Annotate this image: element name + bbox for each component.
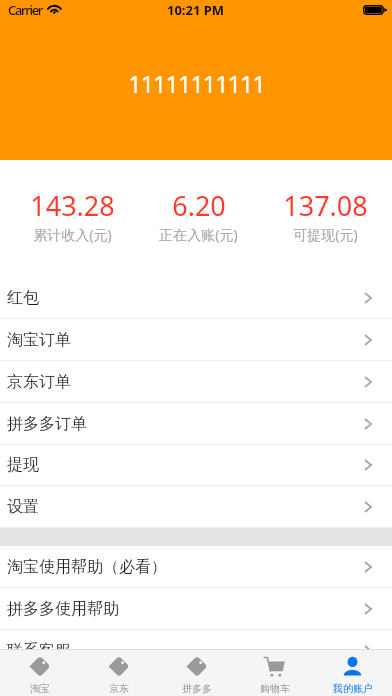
staticText: 正在入账(元) (159, 225, 238, 244)
button[interactable]: 淘宝 (0, 650, 79, 696)
staticText: 淘宝 (30, 682, 50, 695)
staticText: Carrier (8, 1, 43, 19)
button[interactable]: 拼多多使用帮助 (0, 588, 392, 630)
staticText: 购物车 (260, 682, 290, 695)
staticText: 淘宝使用帮助（必看） (7, 557, 167, 577)
staticText: 提现 (7, 455, 39, 475)
staticText: 拼多多订单 (7, 414, 87, 434)
button[interactable]: 拼多多 (158, 650, 236, 696)
staticText: 红包 (7, 288, 39, 308)
button[interactable]: 我的账户 (314, 650, 392, 696)
staticText: 137.08 (283, 187, 368, 224)
staticText: 设置 (7, 497, 39, 517)
button[interactable]: 提现 (0, 445, 392, 486)
button[interactable]: 设置 (0, 486, 392, 528)
button[interactable]: 143.28 (9, 187, 135, 244)
button[interactable]: 淘宝订单 (0, 319, 392, 361)
button[interactable]: 京东 (79, 650, 158, 696)
staticText: 11111111111 (128, 67, 265, 100)
staticText: 联系客服 (7, 641, 71, 661)
button[interactable]: 淘宝使用帮助（必看） (0, 546, 392, 588)
button[interactable]: 拼多多订单 (0, 403, 392, 445)
staticText: 可提现(元) (293, 225, 358, 244)
staticText: 10:21 PM (167, 1, 225, 19)
button[interactable]: 购物车 (236, 650, 314, 696)
staticText: 京东订单 (7, 372, 71, 392)
staticText: 我的账户 (333, 682, 373, 695)
button[interactable]: 137.08 (262, 187, 389, 244)
staticText: 拼多多使用帮助 (7, 599, 119, 619)
staticText: 淘宝订单 (7, 330, 71, 350)
staticText: 累计收入(元) (33, 225, 112, 244)
staticText: 143.28 (30, 187, 115, 224)
staticText: 拼多多 (182, 682, 212, 695)
staticText: 6.20 (172, 187, 226, 224)
button[interactable]: 红包 (0, 277, 392, 319)
staticText: 京东 (109, 682, 129, 695)
button[interactable]: 联系客服 (0, 630, 392, 672)
button[interactable]: 6.20 (135, 187, 262, 244)
button[interactable]: 京东订单 (0, 361, 392, 403)
